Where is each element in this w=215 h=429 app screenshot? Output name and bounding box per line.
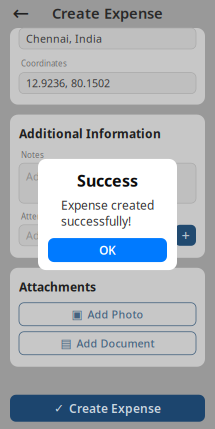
button[interactable]: Add Photo <box>19 303 196 326</box>
button[interactable]: OK <box>48 238 167 262</box>
staticText: Expense created successfully! <box>61 197 154 229</box>
staticText: Create Expense <box>69 400 161 416</box>
staticText: ▣ <box>71 307 82 321</box>
staticText: Additional notes <box>26 169 110 183</box>
button[interactable]: Add Document <box>19 332 196 355</box>
staticText: Attendees <box>21 211 61 222</box>
staticText: Create Expense <box>52 3 163 23</box>
staticText: Additional Information <box>19 126 161 141</box>
staticText: ← <box>12 2 29 24</box>
staticText: 12.9236, 80.1502 <box>26 76 110 90</box>
staticText: OK <box>99 242 116 258</box>
staticText: Add Document <box>76 336 154 350</box>
button[interactable]: ✓ <box>10 395 205 422</box>
staticText: Coordinates <box>21 58 67 69</box>
staticText: Success <box>77 170 138 191</box>
staticText: Add Photo <box>87 307 143 321</box>
staticText: Chennai, India <box>26 31 102 46</box>
button[interactable]: Back <box>8 2 34 24</box>
button[interactable]: Add attendee <box>175 225 196 246</box>
staticText: + <box>181 226 189 245</box>
staticText: ▤ <box>60 336 71 350</box>
staticText: Attachments <box>19 279 96 295</box>
staticText: ✓ <box>54 401 64 415</box>
staticText: Notes <box>21 150 44 160</box>
staticText: Add attendee <box>26 228 96 242</box>
